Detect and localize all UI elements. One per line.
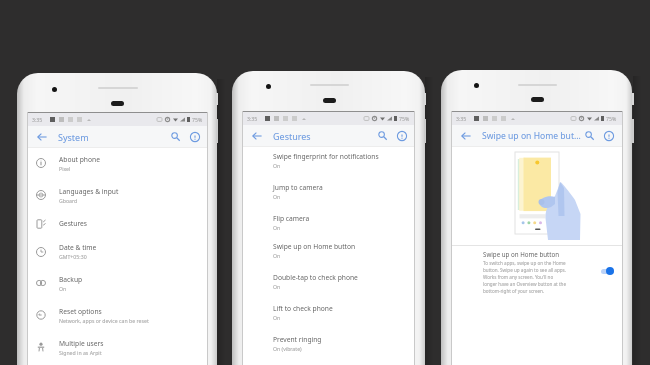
button[interactable]: Search <box>376 129 389 142</box>
button[interactable]: About phone <box>27 147 208 179</box>
staticText: Network, apps or device can be reset <box>59 317 149 324</box>
staticText: Multiple users <box>59 339 104 348</box>
staticText: 75% <box>399 115 410 122</box>
button[interactable]: Double-tap to check phone <box>242 269 415 300</box>
button[interactable]: Back <box>35 130 48 143</box>
staticText: 75% <box>606 115 617 122</box>
button[interactable]: Help <box>395 129 408 142</box>
button[interactable]: Date & time <box>27 236 208 267</box>
button[interactable]: Search <box>583 129 596 142</box>
staticText: Prevent ringing <box>273 335 322 344</box>
button[interactable]: Help <box>602 129 615 142</box>
staticText: Gestures <box>59 219 87 228</box>
button[interactable]: Search <box>169 130 182 143</box>
staticText: On <box>273 162 281 169</box>
staticText: 75% <box>192 116 203 123</box>
staticText: On <box>273 224 281 231</box>
staticText: Signed in as Arpit <box>59 349 102 356</box>
staticText: 3:35 <box>247 115 258 122</box>
button[interactable]: Multiple users <box>27 331 208 363</box>
staticText: Jump to camera <box>273 183 323 192</box>
button[interactable]: Lift to check phone <box>242 300 415 331</box>
staticText: Swipe up on Home butt... <box>482 130 583 142</box>
staticText: 3:35 <box>456 115 467 122</box>
staticText: On <box>59 285 67 292</box>
button[interactable]: Reset options <box>27 299 208 331</box>
staticText: Swipe fingerprint for notifications <box>273 152 379 161</box>
staticText: Backup <box>59 275 83 284</box>
staticText: Double-tap to check phone <box>273 273 358 282</box>
staticText: Lift to check phone <box>273 304 333 313</box>
staticText: Gboard <box>59 197 78 204</box>
staticText: Gestures <box>273 130 376 142</box>
button[interactable]: Help <box>188 130 201 143</box>
staticText: On (vibrate) <box>273 345 302 352</box>
button[interactable]: Backup <box>27 267 208 299</box>
staticText: Swipe up on Home button <box>273 242 356 251</box>
button[interactable]: Swipe fingerprint for notifications <box>242 146 415 179</box>
staticText: To switch apps, swipe up on the Home but… <box>483 260 567 294</box>
staticText: Reset options <box>59 307 102 316</box>
button[interactable]: Jump to camera <box>242 179 415 210</box>
staticText: On <box>273 252 281 259</box>
button[interactable]: Swipe up on Home button <box>242 238 415 269</box>
staticText: On <box>273 193 281 200</box>
staticText: GMT+05:30 <box>59 253 87 260</box>
staticText: Date & time <box>59 243 97 252</box>
button[interactable]: Gestures <box>27 211 208 236</box>
staticText: About phone <box>59 155 100 164</box>
staticText: Pixel <box>59 165 71 172</box>
button[interactable]: Back <box>459 129 472 142</box>
staticText: 3:35 <box>32 116 43 123</box>
button[interactable]: Toggle swipe up on Home button <box>601 267 614 275</box>
staticText: System <box>58 131 169 143</box>
button[interactable]: Prevent ringing <box>242 331 415 362</box>
button[interactable]: Flip camera <box>242 210 415 238</box>
staticText: On <box>273 283 281 290</box>
staticText: Languages & input <box>59 187 119 196</box>
staticText: Swipe up on Home button <box>483 250 560 258</box>
button[interactable]: Back <box>250 129 263 142</box>
button[interactable]: Languages & input <box>27 179 208 211</box>
staticText: Flip camera <box>273 214 310 223</box>
staticText: On <box>273 314 281 321</box>
